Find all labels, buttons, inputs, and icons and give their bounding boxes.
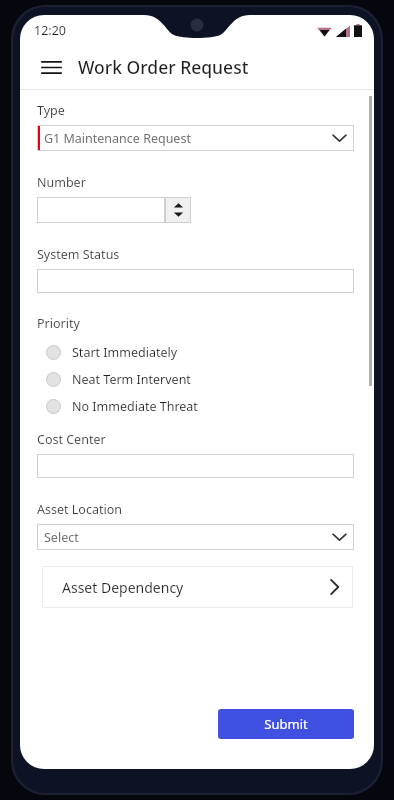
button[interactable] [37,269,354,293]
staticText: Asset Location [37,501,122,518]
staticText: Priority [37,315,80,332]
button[interactable]: Start Immediately [37,339,354,366]
staticText: Type [37,102,65,119]
staticText: G1 Maintenance Request [44,130,332,147]
staticText: Start Immediately [72,344,178,361]
button[interactable]: Neat Term Intervent [37,366,354,393]
button[interactable]: G1 Maintenance Request [37,125,354,151]
button[interactable]: No Immediate Threat [37,393,354,420]
staticText: System Status [37,246,120,263]
staticText: Number [37,174,86,191]
button[interactable]: Asset Dependency [42,566,353,608]
staticText: Work Order Request [78,55,249,79]
staticText: No Immediate Threat [72,398,198,415]
staticText: Select [44,529,332,546]
button[interactable] [37,454,354,478]
button[interactable] [37,197,191,223]
staticText: Neat Term Intervent [72,371,191,388]
staticText: Asset Dependency [62,578,330,597]
staticText: 12:20 [34,22,66,39]
staticText: Cost Center [37,431,106,448]
button[interactable]: Submit [218,709,354,739]
staticText: Submit [264,715,308,733]
button[interactable]: Open navigation menu [34,50,68,84]
button[interactable]: Select [37,524,354,550]
